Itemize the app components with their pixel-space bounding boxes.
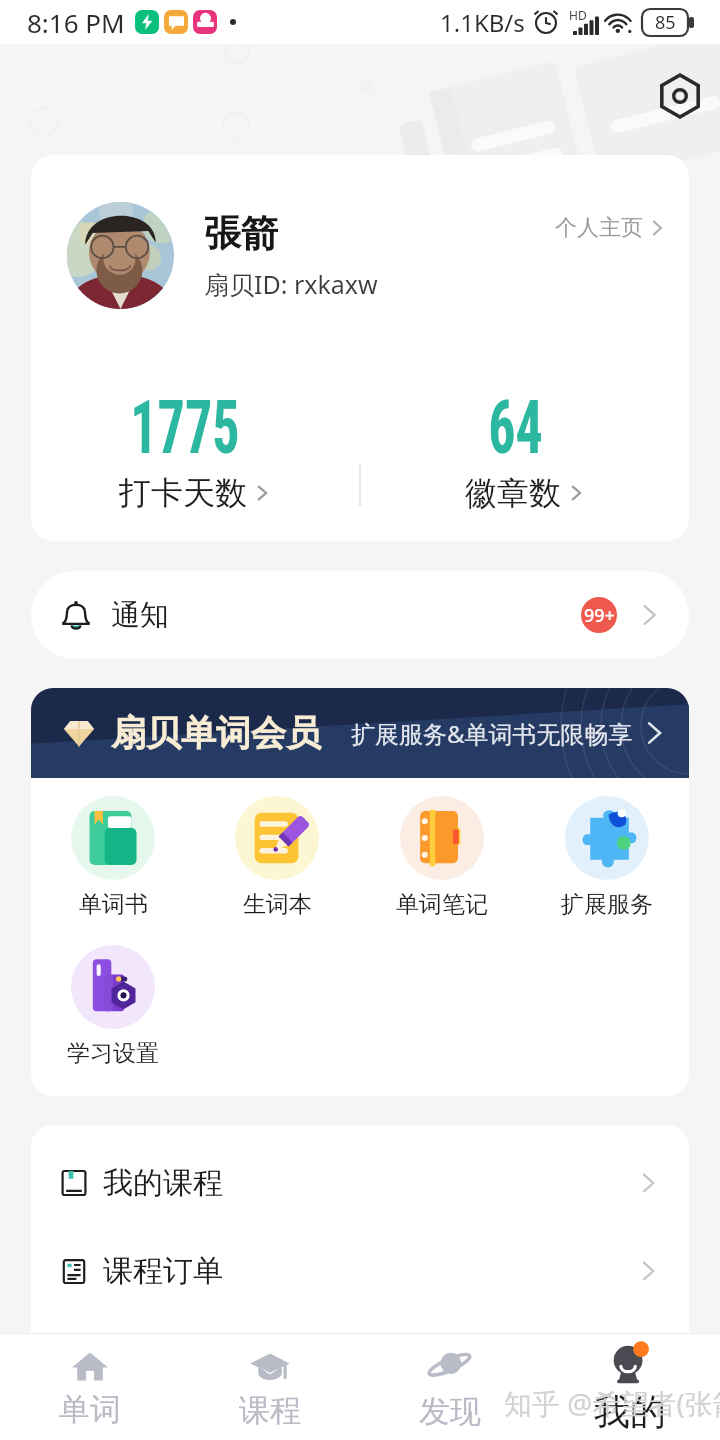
staticText: 8:16 PM (27, 5, 125, 40)
staticText: 扇贝ID: rxkaxw (204, 267, 378, 301)
staticText: 单词 (59, 1390, 121, 1429)
staticText: 我的 (594, 1389, 666, 1434)
button[interactable]: 发现 (360, 1334, 540, 1440)
staticText: 课程订单 (103, 1252, 223, 1290)
button[interactable]: 1775 (31, 384, 359, 513)
staticText: 85 (655, 10, 676, 35)
staticText: 单词书 (79, 890, 148, 919)
staticText: HD (569, 7, 587, 23)
staticText: 知乎 @希望者(张箭) (504, 1384, 720, 1422)
button[interactable]: 单词书 (31, 792, 195, 923)
button[interactable]: 我的 (540, 1334, 720, 1440)
button[interactable]: 单词笔记 (359, 792, 524, 923)
button[interactable]: 单词 (0, 1334, 180, 1440)
staticText: 通知 (111, 597, 169, 634)
button[interactable]: Settings (650, 66, 710, 126)
button[interactable]: 扇贝单词会员 (31, 688, 689, 778)
staticText: 个人主页 (555, 214, 643, 242)
staticText: 我的课程 (103, 1164, 223, 1202)
staticText: 单词笔记 (396, 890, 488, 919)
staticText: 扩展服务 (561, 890, 653, 919)
button[interactable]: 64 (361, 384, 689, 513)
button[interactable]: 我的课程 (31, 1139, 689, 1227)
button[interactable]: 学习设置 (31, 941, 195, 1072)
button[interactable]: 课程 (180, 1334, 360, 1440)
staticText: 徽章数 (465, 473, 561, 513)
staticText: 扇贝单词会员 (111, 711, 321, 755)
button[interactable]: 课程订单 (31, 1227, 689, 1315)
staticText: 学习设置 (67, 1039, 159, 1068)
button[interactable]: 生词本 (195, 792, 359, 923)
staticText: 课程 (239, 1391, 301, 1430)
staticText: 64 (488, 384, 543, 471)
staticText: 扩展服务&单词书无限畅享 (351, 717, 633, 750)
button[interactable]: 張箭 (31, 155, 689, 355)
staticText: 生词本 (243, 890, 312, 919)
staticText: 1775 (130, 384, 240, 471)
button[interactable]: 扩展服务 (524, 792, 689, 923)
staticText: 99+ (584, 603, 615, 628)
staticText: 打卡天数 (119, 473, 247, 513)
button[interactable]: 通知 (31, 571, 689, 659)
staticText: 1.1KB/s (440, 6, 525, 39)
staticText: 发现 (419, 1392, 481, 1431)
staticText: 張箭 (204, 210, 278, 257)
